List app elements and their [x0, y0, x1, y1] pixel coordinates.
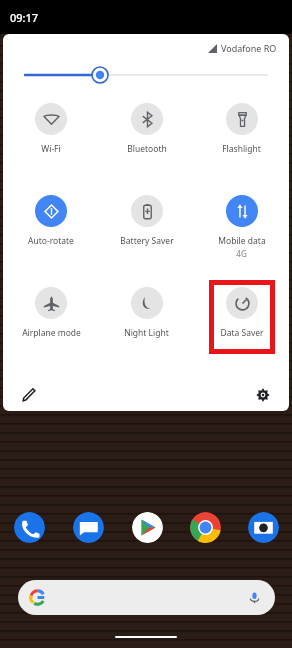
button[interactable]: Night Light — [99, 280, 194, 372]
button[interactable]: Play Store — [132, 512, 163, 543]
button[interactable]: Camera — [248, 512, 279, 543]
staticText: 09:17 — [10, 10, 39, 25]
button[interactable]: Mobile data — [194, 188, 289, 280]
button[interactable]: Auto-rotate — [3, 188, 99, 280]
staticText: Vodafone RO — [221, 42, 277, 54]
button[interactable]: Phone — [14, 512, 45, 543]
button[interactable]: Data Saver — [194, 280, 289, 372]
button[interactable]: Edit — [17, 383, 41, 407]
staticText: Wi-Fi — [41, 143, 61, 155]
button[interactable]: Messages — [73, 512, 104, 543]
staticText: Battery Saver — [120, 235, 174, 247]
button[interactable]: Wi-Fi — [3, 96, 99, 188]
staticText: Bluetooth — [127, 143, 167, 155]
staticText: Data Saver — [220, 327, 264, 339]
staticText: Airplane mode — [22, 327, 81, 339]
button[interactable]: Chrome — [190, 512, 221, 543]
staticText: Auto-rotate — [28, 235, 74, 247]
staticText: Flashlight — [222, 143, 261, 155]
button[interactable]: Airplane mode — [3, 280, 99, 372]
staticText: 4G — [236, 248, 247, 259]
staticText: Mobile data — [218, 235, 266, 247]
staticText: Night Light — [124, 327, 169, 339]
button[interactable]: Flashlight — [194, 96, 289, 188]
button[interactable]: Bluetooth — [99, 96, 194, 188]
button[interactable]: Battery Saver — [99, 188, 194, 280]
button[interactable]: Settings — [251, 383, 275, 407]
button[interactable] — [18, 580, 275, 615]
